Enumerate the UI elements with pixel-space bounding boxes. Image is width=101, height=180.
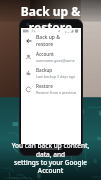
staticText: You can back up content, data, and setti… bbox=[4, 141, 97, 175]
staticText: Back up & restore bbox=[36, 34, 78, 47]
button[interactable]: Restore bbox=[21, 81, 81, 97]
staticText: Last backup 3 days ago bbox=[36, 74, 76, 79]
staticText: username.goes@somemail.com bbox=[36, 58, 78, 63]
staticText: Account bbox=[36, 51, 54, 57]
staticText: Restore from a previous backup bbox=[36, 90, 78, 95]
staticText: Back up & restore bbox=[0, 3, 101, 35]
button[interactable]: Account bbox=[21, 49, 81, 65]
button[interactable]: Backup bbox=[21, 65, 81, 81]
button[interactable]: Back bbox=[24, 36, 33, 45]
staticText: Restore bbox=[36, 83, 53, 89]
staticText: Backup bbox=[36, 67, 53, 73]
